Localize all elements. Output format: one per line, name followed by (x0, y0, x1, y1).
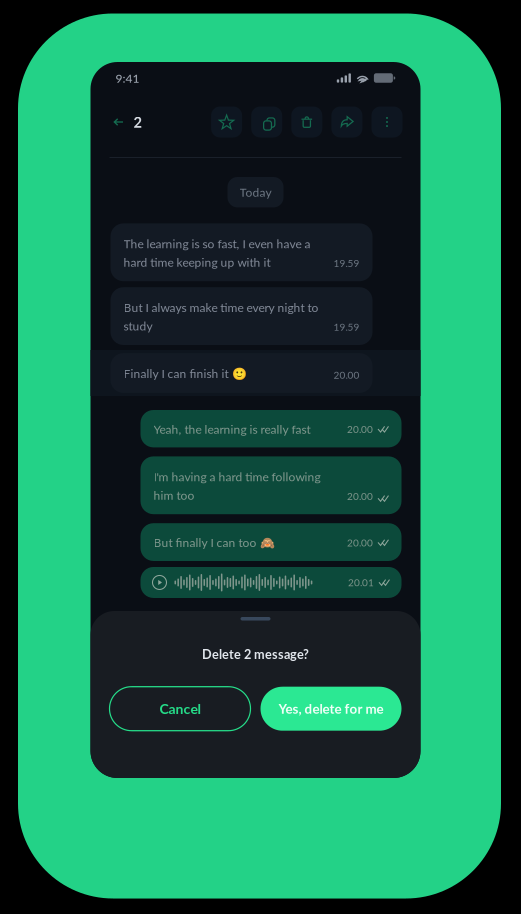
staticText: 20.00 (347, 537, 373, 549)
staticText: Today (239, 185, 271, 199)
staticText: 19.59 (333, 257, 359, 269)
staticText: Finally I can finish it 🙂 (123, 366, 246, 381)
staticText: 9:41 (115, 71, 139, 85)
staticText: hard time keeping up with it (123, 255, 270, 269)
button[interactable]: Back (107, 106, 129, 137)
button[interactable]: Copy (251, 106, 282, 137)
staticText: study (123, 319, 152, 333)
staticText: Yes, delete for me (278, 701, 383, 717)
button[interactable]: Forward (331, 106, 362, 137)
staticText: him too (153, 488, 194, 502)
staticText: But finally I can too 🙈 (153, 535, 274, 550)
staticText: Yeah, the learning is really fast (153, 422, 310, 436)
button[interactable]: More options (371, 106, 402, 137)
staticText: 20.01 (348, 576, 374, 588)
button[interactable]: Cancel (109, 687, 250, 731)
staticText: The learning is so fast, I even have a (123, 236, 310, 251)
button[interactable]: Yes, delete for me (260, 687, 401, 731)
staticText: I'm having a hard time following (153, 469, 320, 484)
staticText: 20.00 (333, 369, 359, 381)
staticText: Cancel (159, 700, 200, 717)
staticText: 20.00 (347, 490, 373, 502)
staticText: 20.00 (347, 423, 373, 435)
staticText: But I always make time every night to (123, 300, 318, 315)
button[interactable]: Favourite (211, 106, 242, 137)
staticText: Delete 2 message? (202, 646, 309, 662)
button[interactable]: Delete (291, 106, 322, 137)
staticText: 2 (133, 113, 142, 131)
staticText: 19.59 (333, 321, 359, 333)
